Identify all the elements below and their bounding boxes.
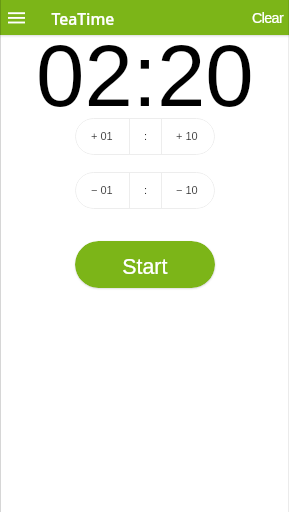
staticText: TeaTime <box>51 8 114 29</box>
staticText: + 01 <box>91 130 113 142</box>
staticText: 02:20 <box>36 27 254 124</box>
staticText: : <box>144 184 148 196</box>
staticText: − 10 <box>176 184 198 196</box>
button[interactable]: Start <box>75 241 215 288</box>
button[interactable]: Subtract one minute <box>75 172 129 209</box>
staticText: − 01 <box>91 184 113 196</box>
staticText: : <box>144 130 148 142</box>
button[interactable]: Add ten minutes <box>162 118 215 155</box>
button[interactable]: Add one minute <box>75 118 129 155</box>
button[interactable]: Subtract ten minutes <box>162 172 215 209</box>
staticText: Start <box>122 255 167 279</box>
staticText: + 10 <box>176 130 198 142</box>
button[interactable]: Open navigation drawer <box>0 2 32 33</box>
button[interactable]: Clear <box>245 2 289 33</box>
staticText: Clear <box>252 10 283 26</box>
